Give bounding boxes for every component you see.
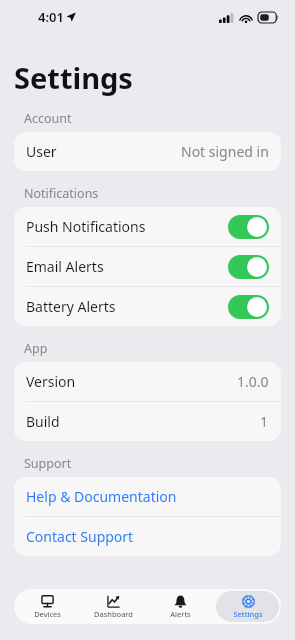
staticText: 1 <box>260 412 269 431</box>
button[interactable]: Settings <box>216 591 279 622</box>
staticText: 4:01 <box>38 8 64 26</box>
staticText: Account <box>24 110 72 127</box>
button[interactable]: Email Alerts <box>14 247 281 286</box>
staticText: Support <box>24 455 72 472</box>
staticText: Version <box>26 372 76 391</box>
staticText: Settings <box>14 58 133 97</box>
staticText: Push Notifications <box>26 217 146 236</box>
button[interactable]: Help & Documentation <box>14 477 281 516</box>
staticText: Settings <box>233 609 263 619</box>
button[interactable]: Battery Alerts <box>14 287 281 326</box>
button[interactable]: Devices <box>16 591 78 622</box>
staticText: 1.0.0 <box>237 372 269 391</box>
staticText: Alerts <box>170 609 191 619</box>
staticText: User <box>26 142 57 161</box>
staticText: Dashboard <box>94 609 133 619</box>
staticText: Build <box>26 412 60 431</box>
button[interactable]: Version <box>14 362 281 401</box>
button[interactable]: Alerts <box>149 591 212 622</box>
staticText: Not signed in <box>181 142 269 161</box>
button[interactable]: Build <box>14 402 281 441</box>
button[interactable]: Toggle, on <box>228 295 269 319</box>
staticText: Devices <box>34 609 61 619</box>
staticText: Email Alerts <box>26 257 104 276</box>
button[interactable]: Push Notifications <box>14 207 281 246</box>
button[interactable]: Dashboard <box>82 591 145 622</box>
staticText: App <box>24 340 48 357</box>
button[interactable]: Toggle, on <box>228 215 269 239</box>
staticText: Contact Support <box>26 527 134 546</box>
staticText: Notifications <box>24 185 99 202</box>
button[interactable]: Toggle, on <box>228 255 269 279</box>
staticText: Help & Documentation <box>26 487 177 506</box>
button[interactable]: Contact Support <box>14 517 281 556</box>
staticText: Battery Alerts <box>26 297 116 316</box>
button[interactable]: User <box>14 132 281 171</box>
